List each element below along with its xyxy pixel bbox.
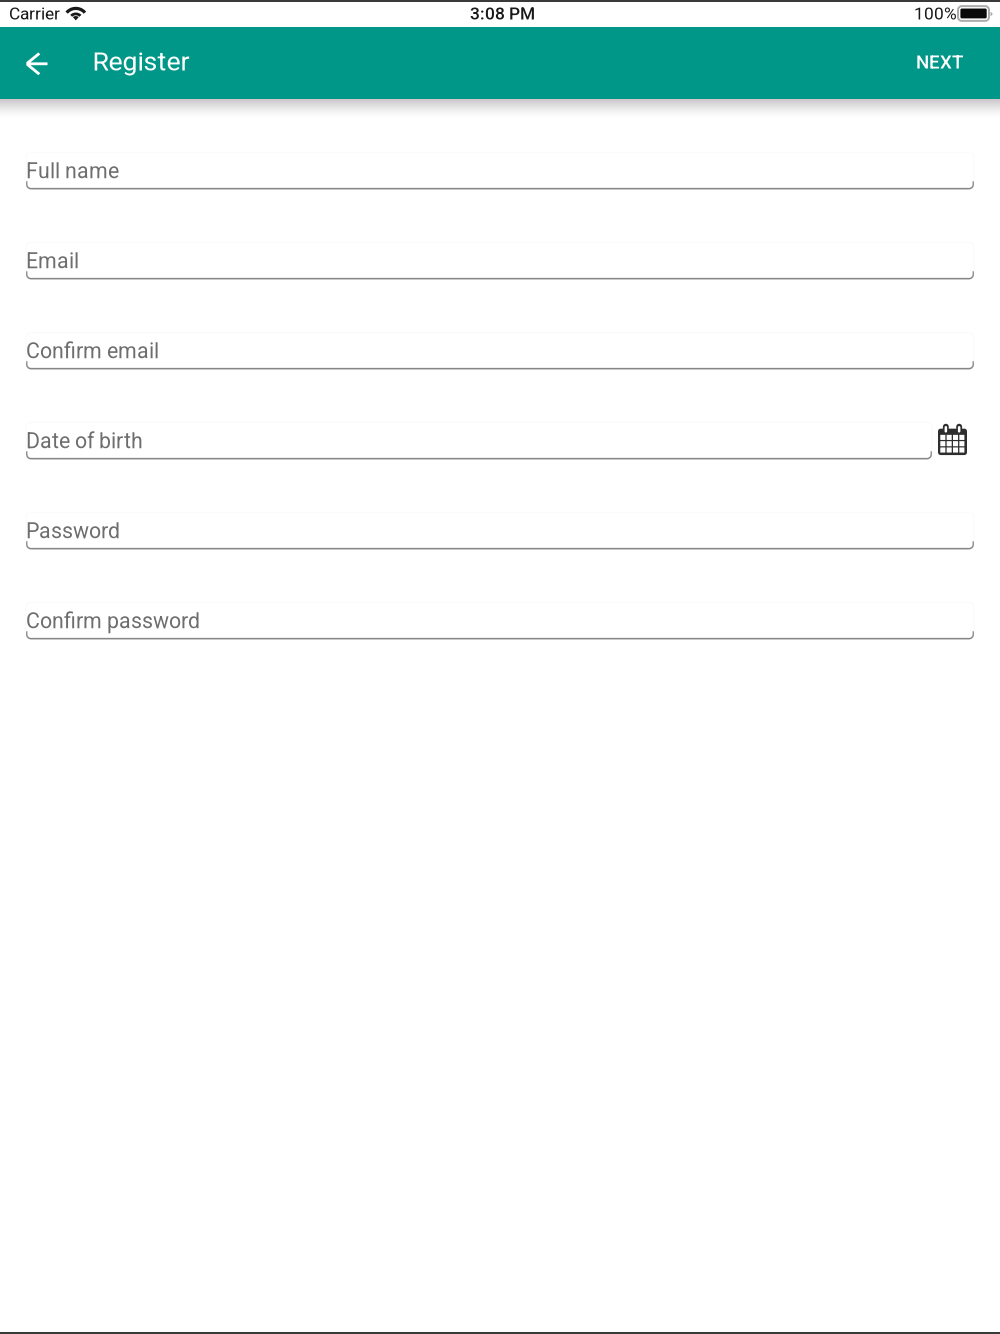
button[interactable]: NEXT — [898, 27, 981, 99]
button[interactable]: Confirm email — [26, 332, 974, 369]
staticText: Password — [26, 518, 120, 543]
button[interactable]: Password — [26, 512, 974, 549]
button[interactable]: Full name — [26, 152, 974, 189]
staticText: Register — [92, 46, 189, 77]
staticText: Carrier — [9, 3, 60, 24]
button[interactable]: Email — [26, 242, 974, 279]
staticText: Confirm email — [26, 338, 159, 363]
staticText: Email — [26, 248, 79, 273]
button[interactable]: Choose date of birth — [930, 417, 974, 461]
staticText: 3:08 PM — [470, 3, 535, 24]
button[interactable]: Confirm password — [26, 602, 974, 639]
button[interactable]: Back — [13, 27, 61, 99]
staticText: Confirm password — [26, 608, 200, 633]
staticText: Full name — [26, 158, 119, 183]
staticText: Date of birth — [26, 428, 143, 453]
staticText: NEXT — [916, 51, 963, 73]
staticText: 100% — [914, 3, 957, 24]
button[interactable]: Date of birth — [26, 422, 932, 459]
